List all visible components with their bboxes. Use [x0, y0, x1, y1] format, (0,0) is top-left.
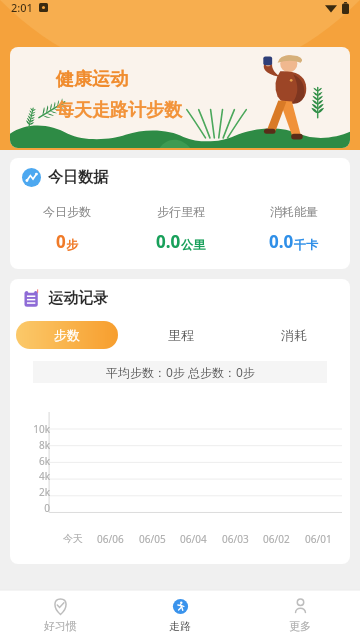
staticText: 8k	[38, 438, 50, 452]
staticText: 千卡	[294, 237, 318, 252]
button[interactable]: 更多	[240, 590, 360, 640]
staticText: 2:01	[11, 0, 33, 15]
staticText: 06/04	[180, 532, 207, 546]
button[interactable]: 好习惯	[0, 590, 120, 640]
button[interactable]: 里程	[124, 321, 237, 349]
staticText: 06/05	[139, 532, 166, 546]
staticText: 步数	[54, 327, 80, 343]
staticText: 06/06	[97, 532, 124, 546]
staticText: 步	[66, 237, 78, 252]
staticText: 平均步数：0步 总步数：0步	[106, 364, 255, 380]
staticText: 今日步数	[43, 204, 91, 219]
staticText: 06/02	[263, 532, 290, 546]
staticText: 公里	[181, 237, 205, 252]
staticText: 每天走路计步数	[56, 99, 182, 122]
staticText: 健康运动	[56, 68, 128, 91]
staticText: 0	[44, 501, 50, 515]
staticText: 运动记录	[48, 289, 108, 308]
staticText: 消耗能量	[270, 204, 318, 219]
staticText: 4k	[38, 469, 50, 483]
button[interactable]: 今日数据	[10, 158, 350, 269]
staticText: 更多	[289, 619, 311, 633]
staticText: 06/01	[305, 532, 332, 546]
staticText: 消耗	[281, 327, 307, 343]
staticText: 0.0	[269, 230, 294, 253]
staticText: 2k	[38, 485, 50, 499]
staticText: 6k	[38, 454, 50, 468]
staticText: 好习惯	[44, 619, 77, 633]
staticText: 步行里程	[157, 204, 205, 219]
button[interactable]: 步数	[16, 321, 118, 349]
staticText: 06/03	[222, 532, 249, 546]
staticText: 今天	[63, 532, 83, 545]
button[interactable]: 健康运动	[10, 47, 350, 148]
button[interactable]: 消耗能量	[237, 204, 350, 253]
button[interactable]: 走路	[120, 590, 240, 640]
staticText: 0.0	[156, 230, 181, 253]
staticText: 走路	[169, 619, 191, 633]
staticText: 今日数据	[48, 168, 108, 187]
staticText: 里程	[168, 327, 194, 343]
button[interactable]: 今日步数	[10, 204, 124, 253]
staticText: 0	[56, 230, 66, 253]
button[interactable]: 消耗	[237, 321, 350, 349]
button[interactable]: 步行里程	[124, 204, 237, 253]
staticText: 10k	[33, 422, 50, 436]
